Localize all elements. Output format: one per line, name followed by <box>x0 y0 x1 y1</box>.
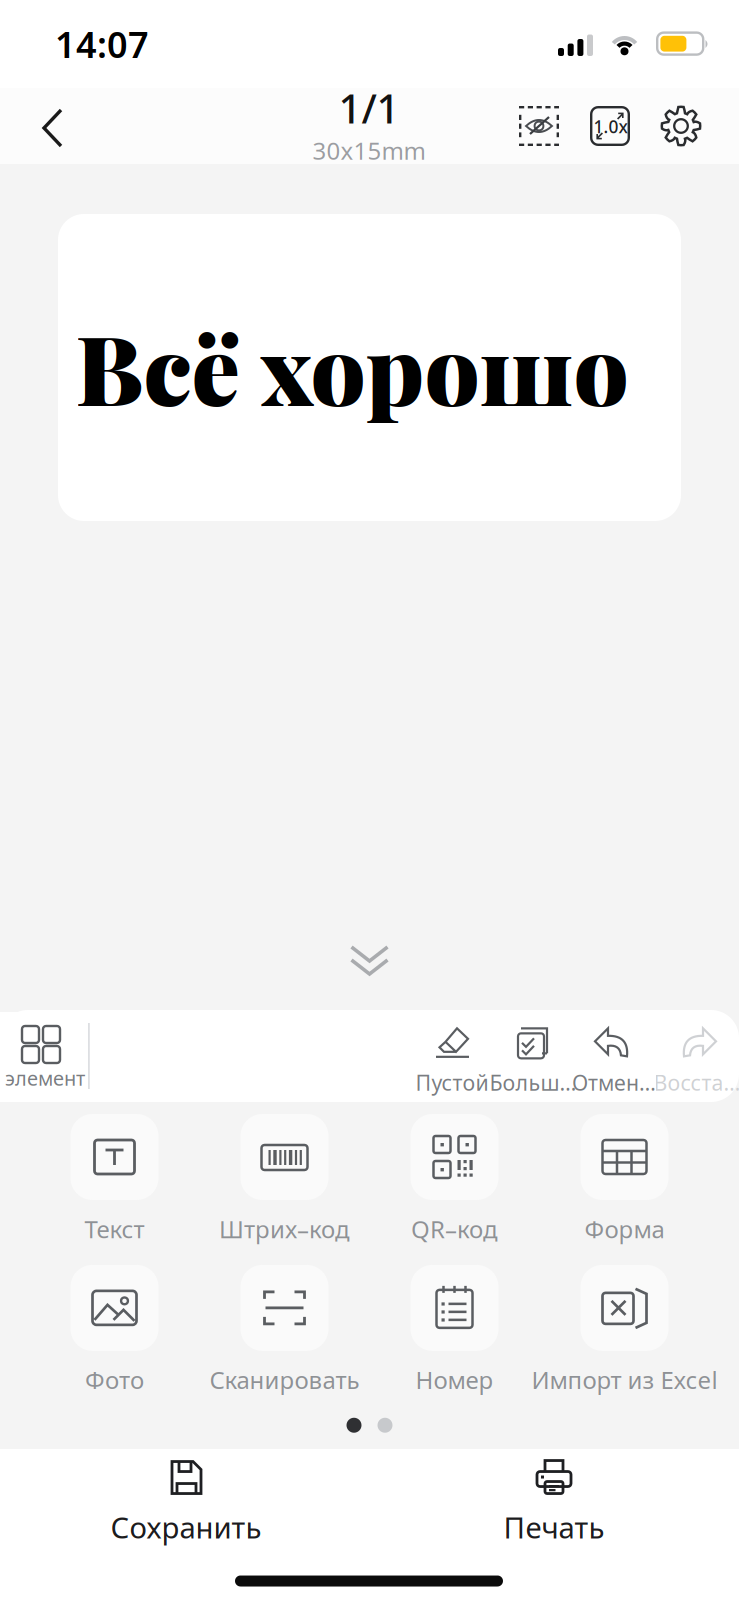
button[interactable]: Штрих–код <box>199 1114 369 1245</box>
staticText: Сканировать <box>209 1364 359 1396</box>
staticText: Больш… <box>489 1068 576 1097</box>
staticText: Пустой <box>415 1068 488 1097</box>
button[interactable]: Hide elements <box>504 91 574 161</box>
button[interactable]: Текст <box>29 1114 199 1245</box>
staticText: Импорт из Excel <box>531 1364 717 1396</box>
staticText: Фото <box>85 1364 144 1396</box>
staticText: 30x15mm <box>312 135 425 166</box>
staticText: 1.0x <box>593 115 627 138</box>
button[interactable]: Пустой <box>411 1015 493 1101</box>
button[interactable]: Back <box>17 91 91 165</box>
button[interactable]: Отмен… <box>573 1015 655 1101</box>
button[interactable]: Сохранить <box>66 1449 306 1553</box>
button[interactable]: Форма <box>539 1114 709 1245</box>
staticText: элемент <box>5 1065 85 1091</box>
button[interactable]: Zoom level <box>575 91 645 161</box>
staticText: Форма <box>584 1213 664 1245</box>
staticText: Печать <box>503 1507 604 1546</box>
button[interactable]: QR–код <box>369 1114 539 1245</box>
button[interactable]: Печать <box>434 1449 674 1553</box>
button[interactable]: Импорт из Excel <box>539 1265 709 1396</box>
button[interactable]: Фото <box>29 1265 199 1396</box>
staticText: 1/1 <box>338 81 399 135</box>
staticText: Восста… <box>653 1068 739 1097</box>
staticText: Сохранить <box>110 1507 261 1546</box>
button[interactable]: Больш… <box>492 1015 574 1101</box>
button[interactable]: Номер <box>369 1265 539 1396</box>
staticText: Штрих–код <box>219 1213 350 1245</box>
button[interactable]: Collapse <box>314 926 424 996</box>
staticText: Всё хорошо <box>75 302 628 430</box>
button[interactable]: Восста… <box>656 1015 738 1101</box>
staticText: Номер <box>415 1364 493 1396</box>
button[interactable]: Сканировать <box>199 1265 369 1396</box>
staticText: Отмен… <box>572 1068 656 1097</box>
button[interactable]: Settings <box>646 91 716 161</box>
staticText: Текст <box>84 1213 144 1245</box>
staticText: QR–код <box>411 1213 498 1245</box>
staticText: 14:07 <box>55 20 149 68</box>
button[interactable]: Elements <box>0 1012 90 1104</box>
